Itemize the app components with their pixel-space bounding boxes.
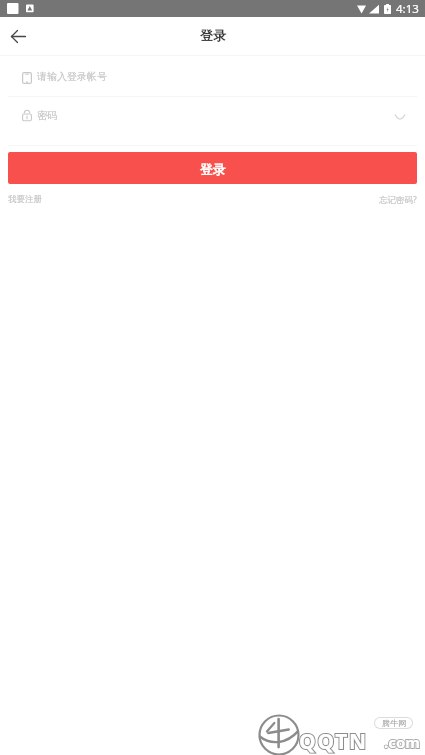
staticText: 腾牛网 [382,718,406,728]
staticText: 我要注册 [8,194,42,205]
staticText: 登录 [200,162,225,178]
staticText: 密码 [37,109,57,122]
staticText: 请输入登录帐号 [37,70,107,83]
button[interactable]: 密码 [8,97,417,134]
staticText: 登录 [200,27,226,43]
button[interactable]: 我要注册 [0,193,46,206]
staticText: QQTN [299,727,368,755]
staticText: 4:13 [396,1,419,17]
button[interactable]: 忘记密码? [375,193,425,207]
button[interactable]: Toggle password visibility [389,105,411,127]
button[interactable]: 请输入登录帐号 [8,56,417,96]
staticText: .com [384,732,420,752]
staticText: .com [384,732,420,752]
staticText: 忘记密码? [379,194,417,206]
button[interactable]: 登录 [8,152,417,184]
staticText: QQTN [299,727,368,755]
button[interactable]: Back [0,18,37,55]
